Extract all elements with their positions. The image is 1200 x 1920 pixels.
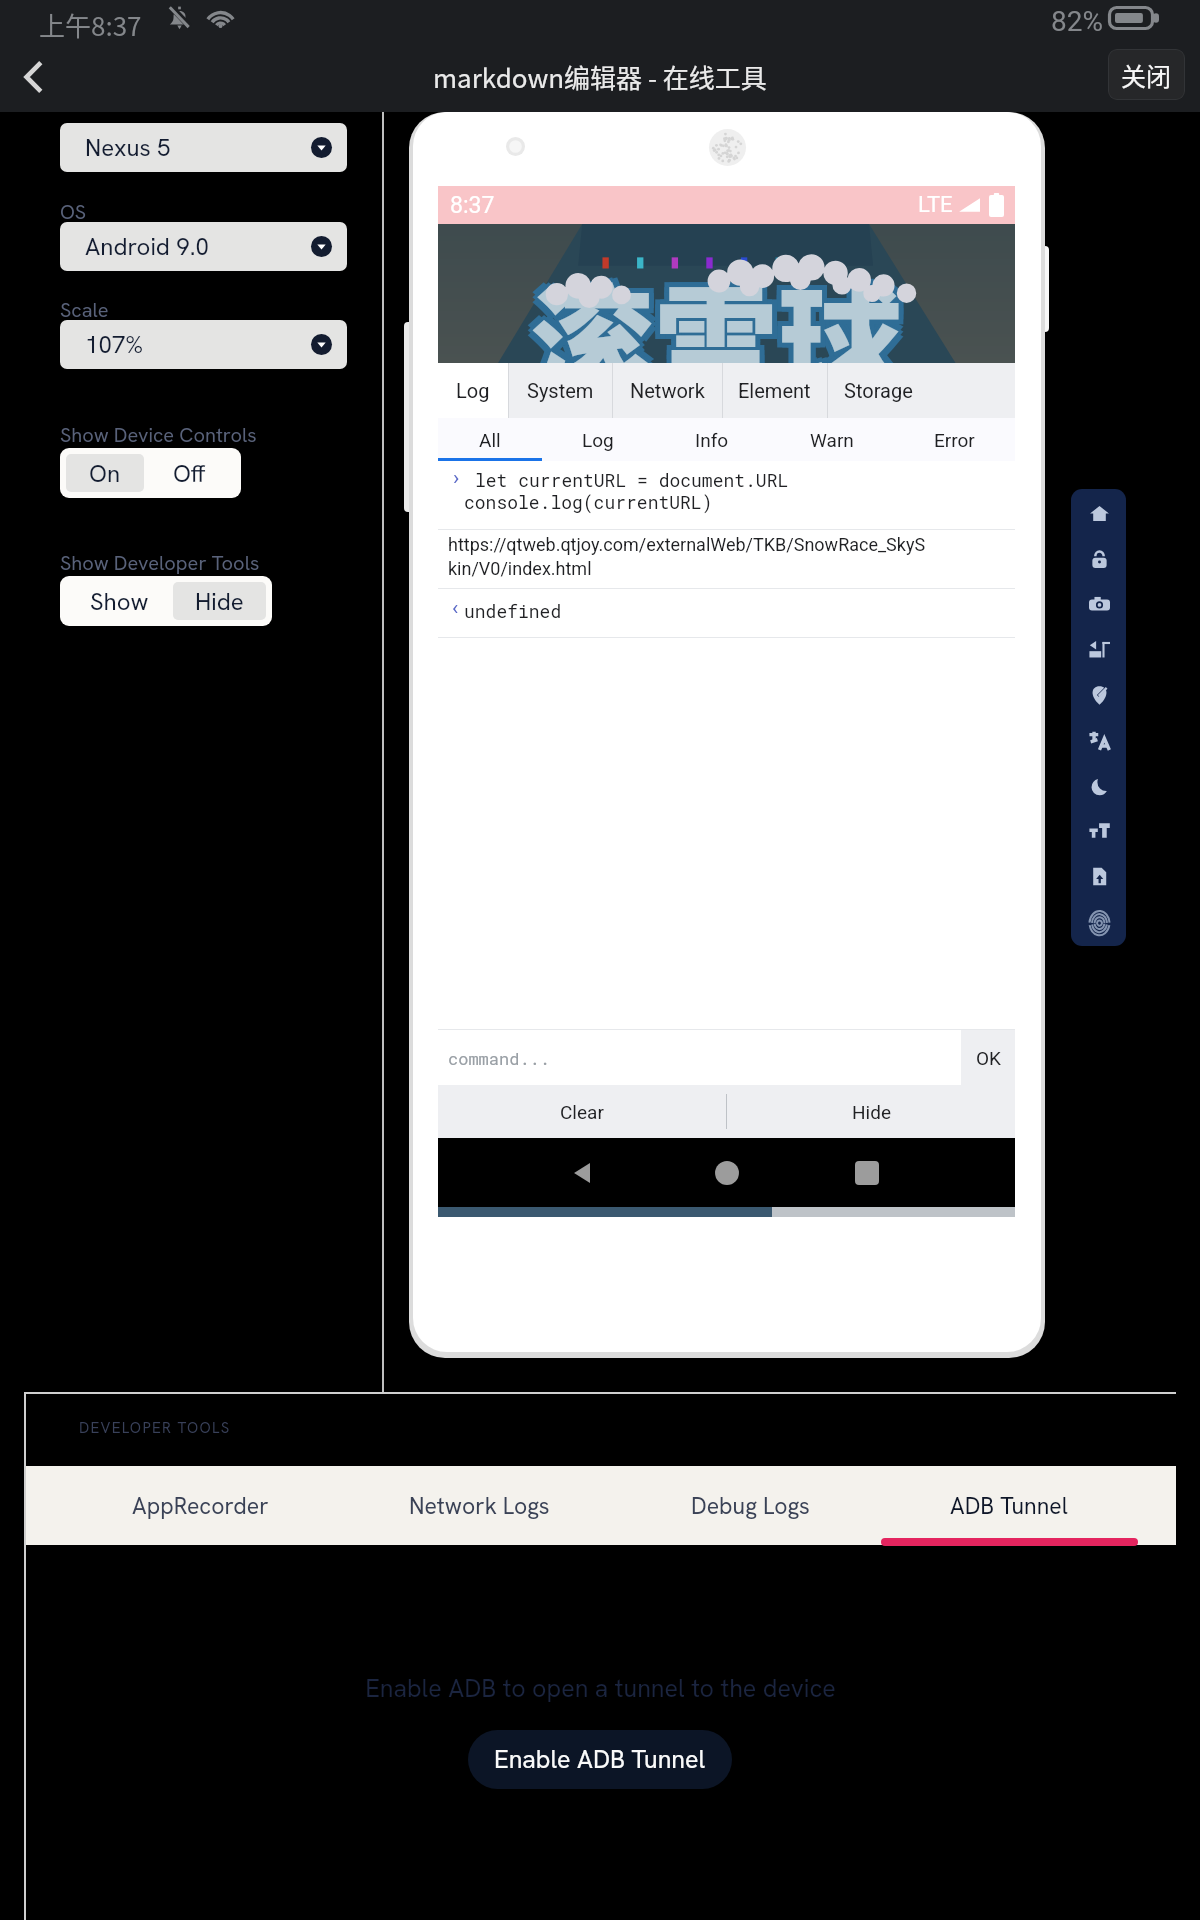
staticText: Scale	[60, 297, 109, 323]
staticText: https://qtweb.qtjoy.com/externalWeb/TKB/…	[448, 534, 926, 579]
staticText: 滚雪球	[525, 241, 898, 380]
staticText: Show Developer Tools	[60, 550, 260, 576]
staticText: Log	[582, 429, 614, 451]
button[interactable]: Dark mode	[1078, 765, 1120, 807]
button[interactable]: Warn	[770, 418, 894, 461]
staticText: command...	[448, 1047, 551, 1069]
staticText: Storage	[844, 379, 913, 402]
button[interactable]: Screenshot	[1078, 583, 1120, 625]
staticText: 滚雪球	[530, 246, 903, 385]
button[interactable]: Recent apps	[849, 1155, 885, 1191]
staticText: Enable ADB Tunnel	[494, 1743, 706, 1776]
button[interactable]: Error	[894, 418, 1015, 461]
button[interactable]: Nexus 5	[60, 123, 347, 172]
button[interactable]: Storage	[827, 363, 930, 418]
button[interactable]: All	[438, 418, 542, 461]
staticText: Hide	[852, 1101, 891, 1123]
button[interactable]: 107%	[60, 320, 347, 369]
staticText: OK	[976, 1047, 1001, 1069]
staticText: ADB Tunnel	[950, 1491, 1068, 1521]
button[interactable]: Info	[654, 418, 770, 461]
staticText: Clear	[560, 1101, 604, 1123]
staticText: AppRecorder	[132, 1491, 269, 1521]
button[interactable]: Log	[438, 363, 508, 418]
staticText: Info	[695, 429, 729, 451]
button[interactable]: 关闭	[1108, 49, 1185, 100]
button[interactable]: AppRecorder	[90, 1466, 310, 1545]
button[interactable]: Network	[612, 363, 722, 418]
button[interactable]: On	[66, 454, 144, 492]
staticText: Error	[934, 429, 975, 451]
button[interactable]: Hide	[727, 1085, 1015, 1138]
staticText: undefined	[464, 599, 562, 623]
staticText: 上午8:37	[39, 6, 142, 44]
button[interactable]: Set location	[1078, 674, 1120, 716]
staticText: let currentURL = document.URL	[475, 468, 789, 492]
staticText: Enable ADB to open a tunnel to the devic…	[365, 1672, 836, 1705]
staticText: Network Logs	[409, 1491, 550, 1521]
staticText: 关闭	[1121, 57, 1172, 93]
staticText: 滚雪球	[525, 251, 898, 390]
staticText: 107%	[85, 329, 144, 360]
staticText: markdown编辑器 - 在线工具	[433, 58, 767, 96]
button[interactable]: Clear	[438, 1085, 726, 1138]
button[interactable]: Upload file	[1078, 855, 1120, 897]
button[interactable]: Debug Logs	[640, 1466, 860, 1545]
staticText: Element	[738, 379, 811, 402]
button[interactable]: Home	[709, 1155, 745, 1191]
button[interactable]: Off	[144, 454, 235, 492]
staticText: OS	[60, 199, 87, 225]
staticText: Nexus 5	[85, 132, 171, 163]
staticText: 滚雪球	[535, 241, 908, 380]
staticText: Warn	[810, 429, 854, 451]
button[interactable]: Rotate	[1078, 628, 1120, 670]
button[interactable]: Enable ADB Tunnel	[468, 1730, 732, 1789]
staticText: All	[479, 429, 501, 451]
button[interactable]: System	[508, 363, 612, 418]
staticText: 滚雪球	[530, 251, 903, 390]
button[interactable]: Language	[1078, 719, 1120, 761]
staticText: Debug Logs	[691, 1491, 810, 1521]
staticText: LTE	[918, 192, 953, 218]
button[interactable]: Log	[542, 418, 654, 461]
staticText: Network	[630, 379, 705, 402]
staticText: 滚雪球	[535, 251, 908, 390]
staticText: console.log(currentURL)	[464, 490, 713, 514]
button[interactable]: Back	[6, 49, 62, 105]
button[interactable]: Back	[565, 1155, 601, 1191]
staticText: Show	[90, 586, 149, 617]
staticText: Log	[456, 379, 490, 402]
staticText: Off	[173, 458, 206, 489]
staticText: ›	[453, 466, 460, 491]
staticText: DEVELOPER TOOLS	[79, 1418, 231, 1438]
staticText: 滚雪球	[535, 246, 908, 385]
button[interactable]: Network Logs	[369, 1466, 589, 1545]
staticText: 8:37	[450, 192, 495, 219]
button[interactable]: Lock screen	[1078, 538, 1120, 580]
staticText: System	[527, 379, 594, 402]
button[interactable]: OK	[961, 1030, 1015, 1085]
button[interactable]: Show	[66, 582, 173, 620]
button[interactable]: Fingerprint	[1078, 901, 1120, 943]
button[interactable]: Home	[1078, 492, 1120, 534]
staticText: ‹	[452, 596, 459, 621]
button[interactable]: ADB Tunnel	[899, 1466, 1119, 1545]
staticText: Android 9.0	[85, 231, 209, 262]
button[interactable]: Font size	[1078, 810, 1120, 852]
staticText: 滚雪球	[530, 241, 903, 380]
button[interactable]: Android 9.0	[60, 222, 347, 271]
staticText: On	[89, 458, 121, 489]
button[interactable]: Hide	[173, 582, 266, 620]
staticText: 82%	[1051, 5, 1103, 38]
staticText: 滚雪球	[525, 246, 898, 385]
staticText: Show Device Controls	[60, 422, 257, 448]
button[interactable]: Element	[722, 363, 827, 418]
staticText: Hide	[195, 586, 244, 617]
